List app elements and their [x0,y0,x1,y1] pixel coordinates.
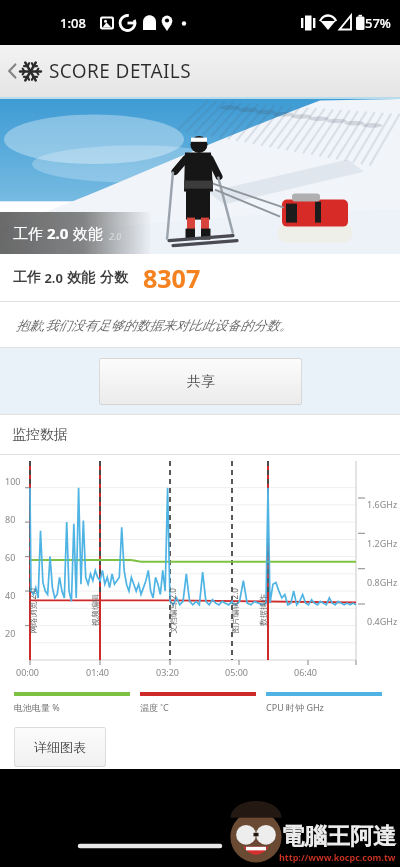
staticText: 06:40 [294,666,318,678]
staticText: 效能 [69,223,103,243]
staticText: 05:00 [225,666,249,678]
staticText: 监控数据 [12,426,68,444]
button[interactable]: 详细图表 [14,727,106,767]
staticText: 2.0 [41,269,67,287]
staticText: 网络浏览 2.0 [26,587,37,633]
staticText: 2.0 [47,223,69,243]
staticText: SCORE DETAILS [49,58,192,84]
staticText: 電腦王阿達 [281,822,396,851]
staticText: 0.8GHz [367,576,398,588]
staticText: 工作 [13,223,47,243]
staticText: 电池电量 % [14,701,60,713]
staticText: 工作 [13,269,41,287]
staticText: 抱歉,我们没有足够的数据来对比此设备的分数。 [16,316,293,334]
staticText: 0.4GHz [367,615,398,627]
staticText: 详细图表 [34,739,86,755]
staticText: 57% [365,14,391,32]
staticText: 2.0 [109,230,122,242]
staticText: 03:20 [156,666,180,678]
button[interactable]: Back [0,45,400,97]
staticText: 1.2GHz [367,537,398,549]
staticText: 共享 [187,373,215,391]
staticText: 数据操作 [258,594,268,626]
staticText: 8307 [143,261,201,295]
staticText: 40 [5,589,16,601]
staticText: 01:40 [86,666,110,678]
staticText: 1.6GHz [367,498,398,510]
button[interactable]: 共享 [99,358,302,405]
staticText: 1:08 [60,14,86,32]
staticText: http://www.kocpc.com.tw [279,851,396,863]
staticText: 00:00 [16,666,40,678]
staticText: 效能 [67,269,95,287]
staticText: 分数 [100,269,128,287]
staticText: 100 [5,475,21,487]
staticText: CPU 时钟 GHz [266,701,324,713]
staticText: 20 [5,627,16,639]
staticText: 温度 ˚C [140,701,169,713]
staticText: 80 [5,513,16,525]
staticText: 60 [5,551,16,563]
staticText: 文档编写 2.0 [166,587,177,633]
staticText: 视频编辑 [90,594,100,626]
other: Back [5,60,19,82]
staticText: 图片编辑 2.0 [228,587,239,633]
